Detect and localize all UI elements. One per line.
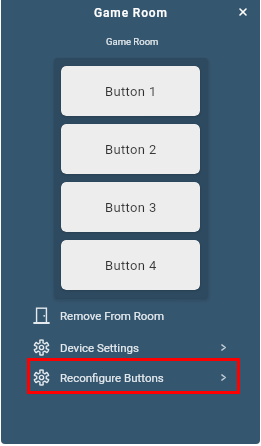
- button[interactable]: Close: [232, 1, 254, 23]
- button[interactable]: Button 2: [61, 124, 200, 174]
- staticText: Button 4: [105, 258, 157, 273]
- staticText: Reconfigure Buttons: [60, 371, 164, 384]
- staticText: Button 1: [105, 84, 157, 99]
- staticText: Button 3: [105, 200, 157, 215]
- staticText: Game Room: [94, 6, 168, 20]
- button[interactable]: Button 4: [61, 240, 200, 290]
- staticText: Game Room: [106, 36, 159, 47]
- button[interactable]: Button 3: [61, 182, 200, 232]
- staticText: Remove From Room: [60, 309, 164, 322]
- button[interactable]: Remove From Room: [1, 300, 260, 330]
- button[interactable]: Reconfigure Buttons: [1, 362, 260, 392]
- staticText: Button 2: [105, 142, 157, 157]
- button[interactable]: Button 1: [61, 66, 200, 116]
- button[interactable]: Device Settings: [1, 332, 260, 362]
- staticText: Device Settings: [60, 341, 139, 354]
